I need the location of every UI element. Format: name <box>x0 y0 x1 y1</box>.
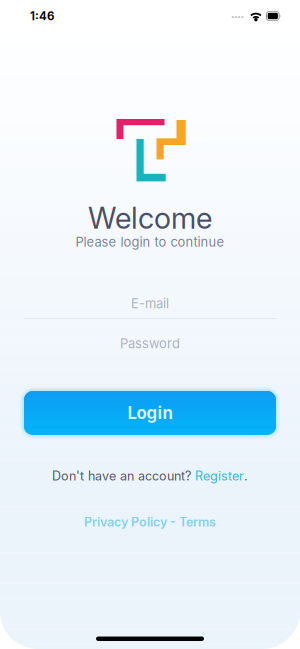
staticText: E-mail <box>131 296 169 311</box>
staticText: Privacy Policy - Terms <box>84 514 216 530</box>
staticText: Register <box>195 468 244 484</box>
button[interactable]: Privacy Policy - Terms <box>84 515 216 529</box>
staticText: Login <box>127 403 172 423</box>
staticText: Welcome <box>88 200 212 236</box>
button[interactable]: Register <box>195 468 244 484</box>
button[interactable]: Login <box>24 391 276 435</box>
staticText: Don't have an account? <box>52 468 195 484</box>
staticText: 1:46 <box>30 9 54 23</box>
staticText: . <box>244 468 248 484</box>
staticText: Please login to continue <box>75 234 224 250</box>
staticText: Password <box>120 336 180 351</box>
